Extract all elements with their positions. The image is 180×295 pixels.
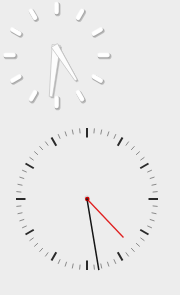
button[interactable]: Two analog clocks (0, 0, 180, 295)
